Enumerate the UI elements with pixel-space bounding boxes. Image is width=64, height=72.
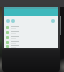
button[interactable] [4,40,58,45]
button[interactable]: Add item [51,19,55,23]
button[interactable]: Sort [11,19,15,23]
button[interactable] [4,45,58,48]
button[interactable]: Filter [6,19,10,23]
button[interactable] [4,25,58,30]
button[interactable] [4,35,58,40]
button[interactable] [4,30,58,35]
